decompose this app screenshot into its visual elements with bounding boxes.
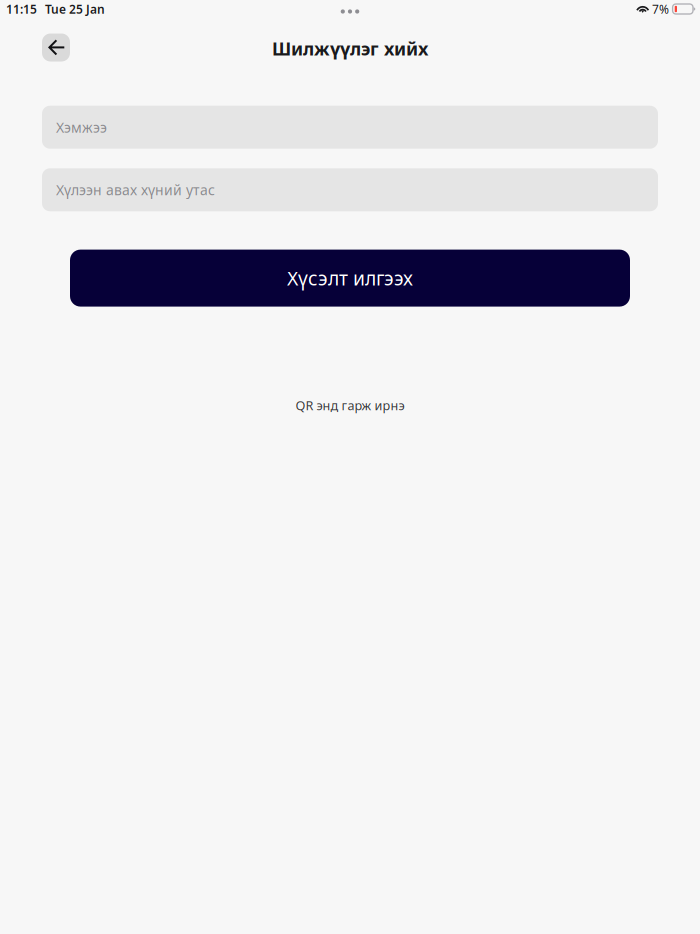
staticText: 11:15 <box>6 1 37 17</box>
staticText: Хүлээн авах хүний утас <box>56 180 215 199</box>
staticText: Шилжүүлэг хийх <box>272 36 428 61</box>
staticText: 7% <box>652 1 669 17</box>
staticText: QR энд гарж ирнэ <box>295 397 404 414</box>
button[interactable]: Хүсэлт илгээх <box>70 250 630 307</box>
staticText: Tue 25 Jan <box>45 1 105 17</box>
button[interactable]: Хүлээн авах хүний утас <box>42 168 658 211</box>
staticText: Хэмжээ <box>56 118 107 137</box>
button[interactable]: Хэмжээ <box>42 106 658 149</box>
button[interactable]: Back <box>42 33 70 61</box>
staticText: Хүсэлт илгээх <box>287 265 413 291</box>
